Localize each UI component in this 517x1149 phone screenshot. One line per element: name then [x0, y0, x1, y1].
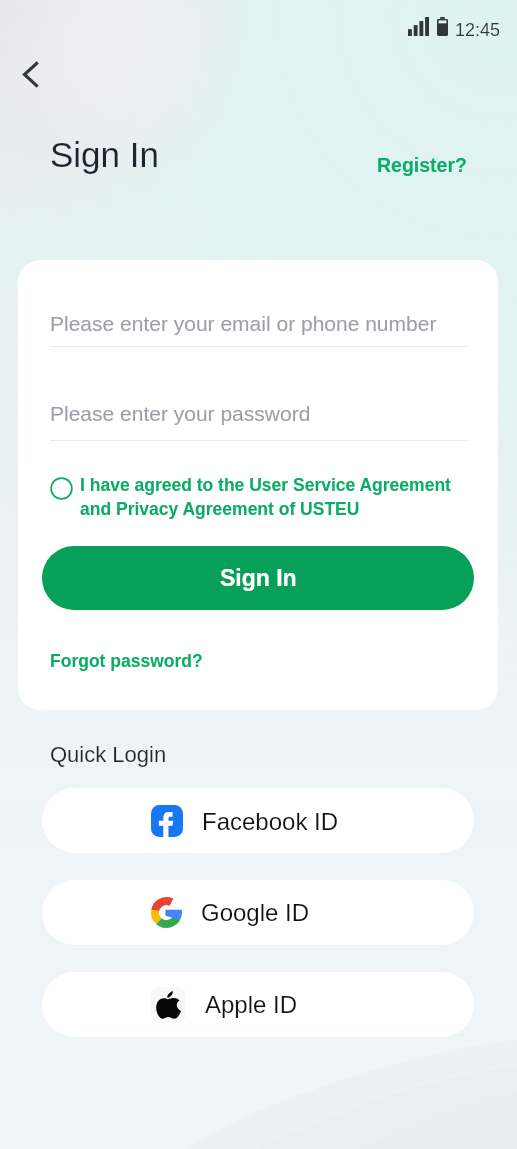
staticText: Please enter your email or phone number	[50, 312, 437, 335]
staticText: Forgot password?	[50, 651, 203, 671]
button[interactable]: Google ID	[42, 880, 474, 945]
staticText: Facebook ID	[202, 808, 339, 835]
button[interactable]: Back	[7, 51, 53, 97]
staticText: Sign In	[220, 565, 297, 591]
staticText: Apple ID	[205, 991, 298, 1018]
staticText: I have agreed to the User Service Agreem…	[80, 475, 472, 519]
staticText: Please enter your password	[50, 402, 311, 425]
button[interactable]: Forgot password?	[50, 651, 203, 671]
button[interactable]: Apple ID	[42, 972, 474, 1037]
staticText: 12:45	[455, 20, 501, 40]
staticText: Register?	[377, 154, 467, 176]
button[interactable]: Register?	[377, 154, 467, 176]
staticText: Sign In	[50, 135, 159, 174]
staticText: Quick Login	[50, 742, 167, 767]
button[interactable]: I have agreed to the User Service Agreem…	[50, 475, 472, 519]
button[interactable]: Facebook ID	[42, 788, 474, 853]
button[interactable]: Sign In	[42, 546, 474, 610]
staticText: Google ID	[201, 899, 310, 926]
